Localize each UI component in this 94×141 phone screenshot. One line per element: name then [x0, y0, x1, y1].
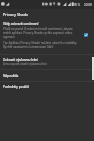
staticText: Přidá na panel Oznámení trvalé oznámení,…	[3, 27, 76, 39]
staticText: Vždy zobrazit oznámení	[3, 22, 39, 26]
staticText: Zobrazit výukovou lekci	[3, 58, 38, 62]
button[interactable]: Vždy zobrazit oznámení	[84, 33, 88, 37]
staticText: Tip: Aplikaci Privacy Shade můžete ukonč…	[3, 41, 81, 49]
button[interactable]: Zobrazit výukovou lekci	[0, 55, 94, 69]
staticText: Znovu spustit úvodní výukovou lekci	[3, 62, 47, 66]
button[interactable]: Vždy zobrazit oznámení	[0, 20, 94, 39]
staticText: Podmínky použití	[3, 85, 29, 89]
staticText: Privacy Shade	[3, 12, 29, 17]
staticText: 20:08	[84, 3, 92, 7]
staticText: 95 %	[74, 3, 81, 7]
button[interactable]: Podmínky použití	[0, 82, 94, 92]
staticText: Nápověda	[3, 74, 19, 78]
button[interactable]: Nápověda	[0, 70, 94, 81]
